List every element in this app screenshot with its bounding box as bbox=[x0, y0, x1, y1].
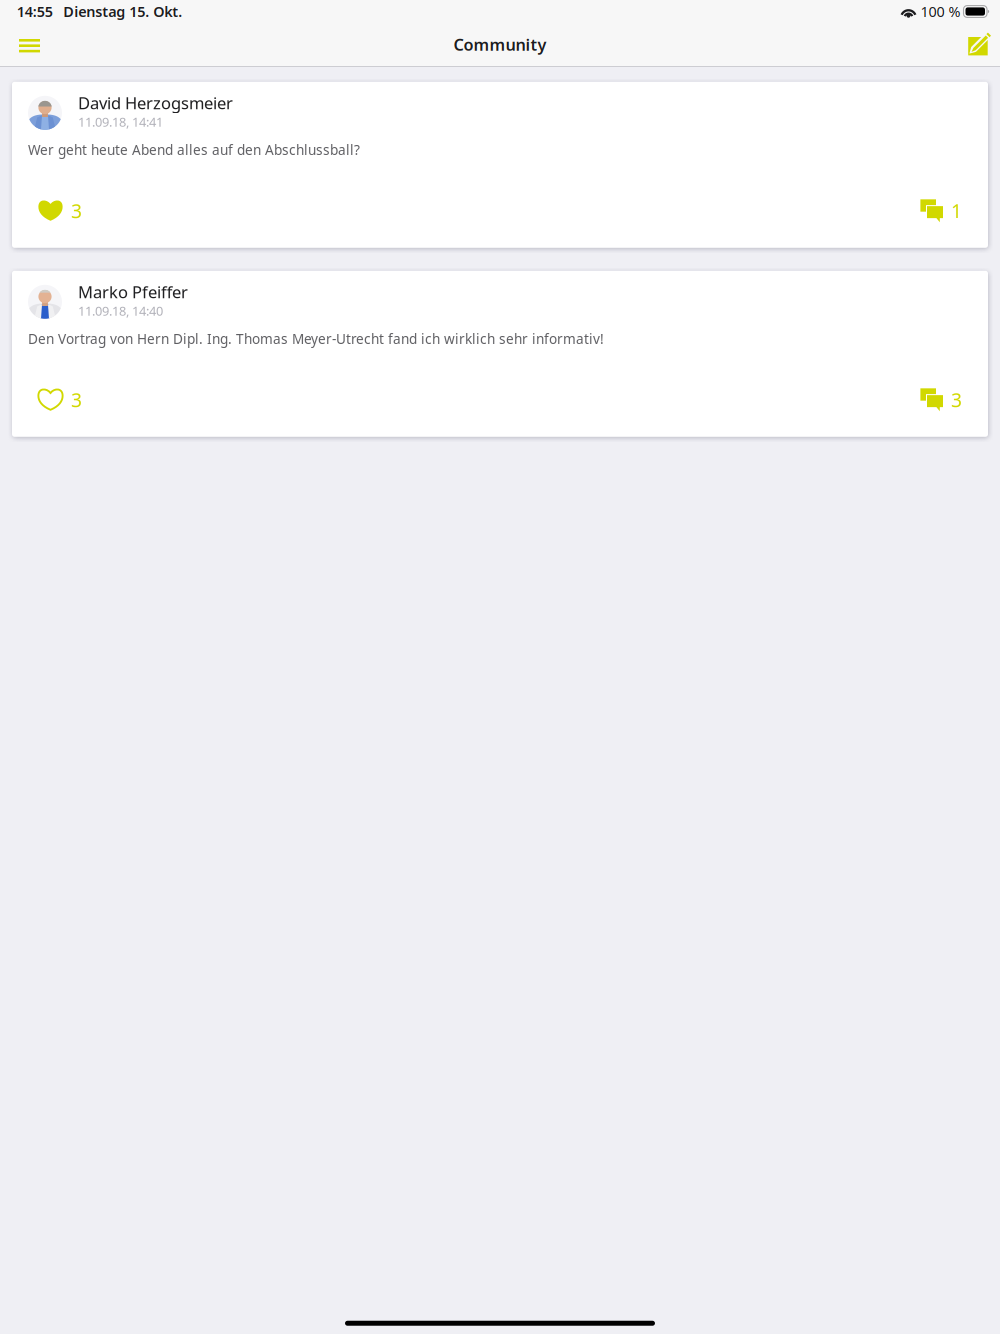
staticText: 3 bbox=[951, 387, 962, 413]
staticText: Wer geht heute Abend alles auf den Absch… bbox=[28, 141, 360, 159]
staticText: Dienstag 15. Okt. bbox=[63, 2, 182, 21]
staticText: 100 % bbox=[920, 2, 960, 21]
staticText: 14:55 bbox=[17, 2, 53, 21]
button[interactable]: Comments, 1 bbox=[920, 196, 962, 226]
button[interactable]: Like, 3 bbox=[38, 385, 82, 415]
button[interactable]: Comments, 3 bbox=[920, 385, 962, 415]
button[interactable]: Like, 3 bbox=[38, 196, 82, 226]
staticText: 1 bbox=[951, 198, 962, 224]
staticText: Community bbox=[453, 34, 546, 55]
staticText: Marko Pfeiffer bbox=[78, 281, 188, 303]
staticText: 11.09.18, 14:40 bbox=[78, 302, 163, 319]
button[interactable]: David Herzogsmeier bbox=[12, 82, 988, 248]
button[interactable]: Menu bbox=[0, 23, 59, 66]
staticText: 3 bbox=[71, 387, 82, 413]
staticText: 3 bbox=[71, 198, 82, 224]
staticText: David Herzogsmeier bbox=[78, 92, 233, 114]
button[interactable]: Compose bbox=[944, 23, 1000, 66]
button[interactable]: Marko Pfeiffer bbox=[12, 271, 988, 437]
staticText: Den Vortrag von Hern Dipl. Ing. Thomas M… bbox=[28, 330, 604, 348]
staticText: 11.09.18, 14:41 bbox=[78, 113, 163, 130]
